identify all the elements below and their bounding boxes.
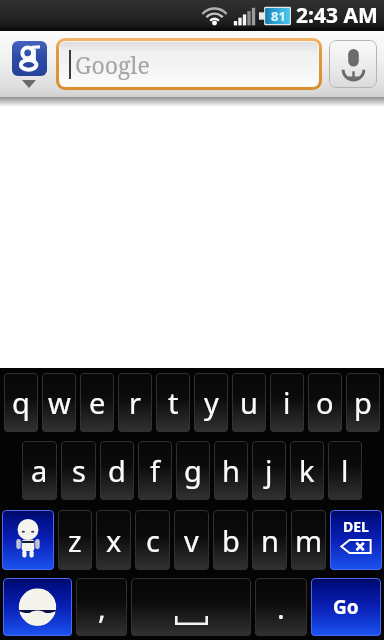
- button[interactable]: h: [214, 441, 248, 500]
- button[interactable]: p: [346, 373, 380, 432]
- staticText: p: [354, 383, 372, 422]
- button[interactable]: u: [232, 373, 266, 432]
- staticText: e: [89, 383, 106, 422]
- button[interactable]: .: [255, 578, 307, 636]
- staticText: r: [129, 383, 141, 422]
- staticText: ,: [98, 588, 106, 627]
- button[interactable]: n: [252, 510, 287, 570]
- button[interactable]: o: [308, 373, 342, 432]
- staticText: f: [150, 451, 160, 490]
- staticText: k: [299, 451, 315, 490]
- staticText: x: [106, 521, 122, 560]
- button[interactable]: f: [138, 441, 172, 500]
- staticText: .: [277, 588, 285, 627]
- staticText: v: [184, 521, 199, 560]
- staticText: b: [222, 521, 240, 560]
- button[interactable]: e: [80, 373, 114, 432]
- staticText: y: [204, 383, 219, 422]
- button[interactable]: j: [252, 441, 286, 500]
- button[interactable]: k: [290, 441, 324, 500]
- button[interactable]: b: [213, 510, 248, 570]
- staticText: o: [316, 383, 334, 422]
- button[interactable]: Google: [60, 42, 318, 86]
- button[interactable]: m: [291, 510, 326, 570]
- button[interactable]: a: [22, 441, 57, 500]
- staticText: c: [146, 521, 160, 560]
- staticText: i: [283, 383, 291, 422]
- button[interactable]: w: [42, 373, 76, 432]
- button[interactable]: Voice search: [329, 40, 377, 88]
- button[interactable]: v: [174, 510, 209, 570]
- staticText: g: [184, 451, 202, 490]
- staticText: a: [31, 451, 48, 490]
- staticText: q: [12, 383, 30, 422]
- button[interactable]: t: [156, 373, 190, 432]
- button[interactable]: c: [135, 510, 170, 570]
- staticText: Google: [75, 49, 150, 80]
- button[interactable]: d: [100, 441, 134, 500]
- button[interactable]: Space: [131, 578, 251, 636]
- staticText: u: [240, 383, 258, 422]
- button[interactable]: x: [96, 510, 131, 570]
- staticText: j: [265, 451, 273, 490]
- staticText: m: [295, 521, 323, 560]
- button[interactable]: z: [58, 510, 92, 570]
- button[interactable]: q: [4, 373, 38, 432]
- button[interactable]: y: [194, 373, 228, 432]
- staticText: Go: [333, 594, 359, 620]
- button[interactable]: Search provider: [10, 41, 48, 88]
- staticText: 81: [271, 7, 286, 25]
- staticText: n: [261, 521, 279, 560]
- button[interactable]: DEL: [330, 510, 382, 570]
- staticText: l: [341, 451, 349, 490]
- staticText: DEL: [343, 517, 369, 536]
- staticText: t: [168, 383, 179, 422]
- staticText: 2:43 AM: [296, 1, 378, 30]
- staticText: h: [222, 451, 240, 490]
- staticText: d: [108, 451, 126, 490]
- button[interactable]: Shift: [2, 510, 54, 570]
- button[interactable]: s: [61, 441, 96, 500]
- button[interactable]: r: [118, 373, 152, 432]
- button[interactable]: ,: [76, 578, 127, 636]
- staticText: s: [72, 451, 86, 490]
- button[interactable]: i: [270, 373, 304, 432]
- button[interactable]: Change language: [3, 578, 72, 636]
- staticText: z: [68, 521, 82, 560]
- button[interactable]: g: [176, 441, 210, 500]
- button[interactable]: Go: [311, 578, 381, 636]
- button[interactable]: l: [328, 441, 362, 500]
- staticText: w: [48, 383, 71, 422]
